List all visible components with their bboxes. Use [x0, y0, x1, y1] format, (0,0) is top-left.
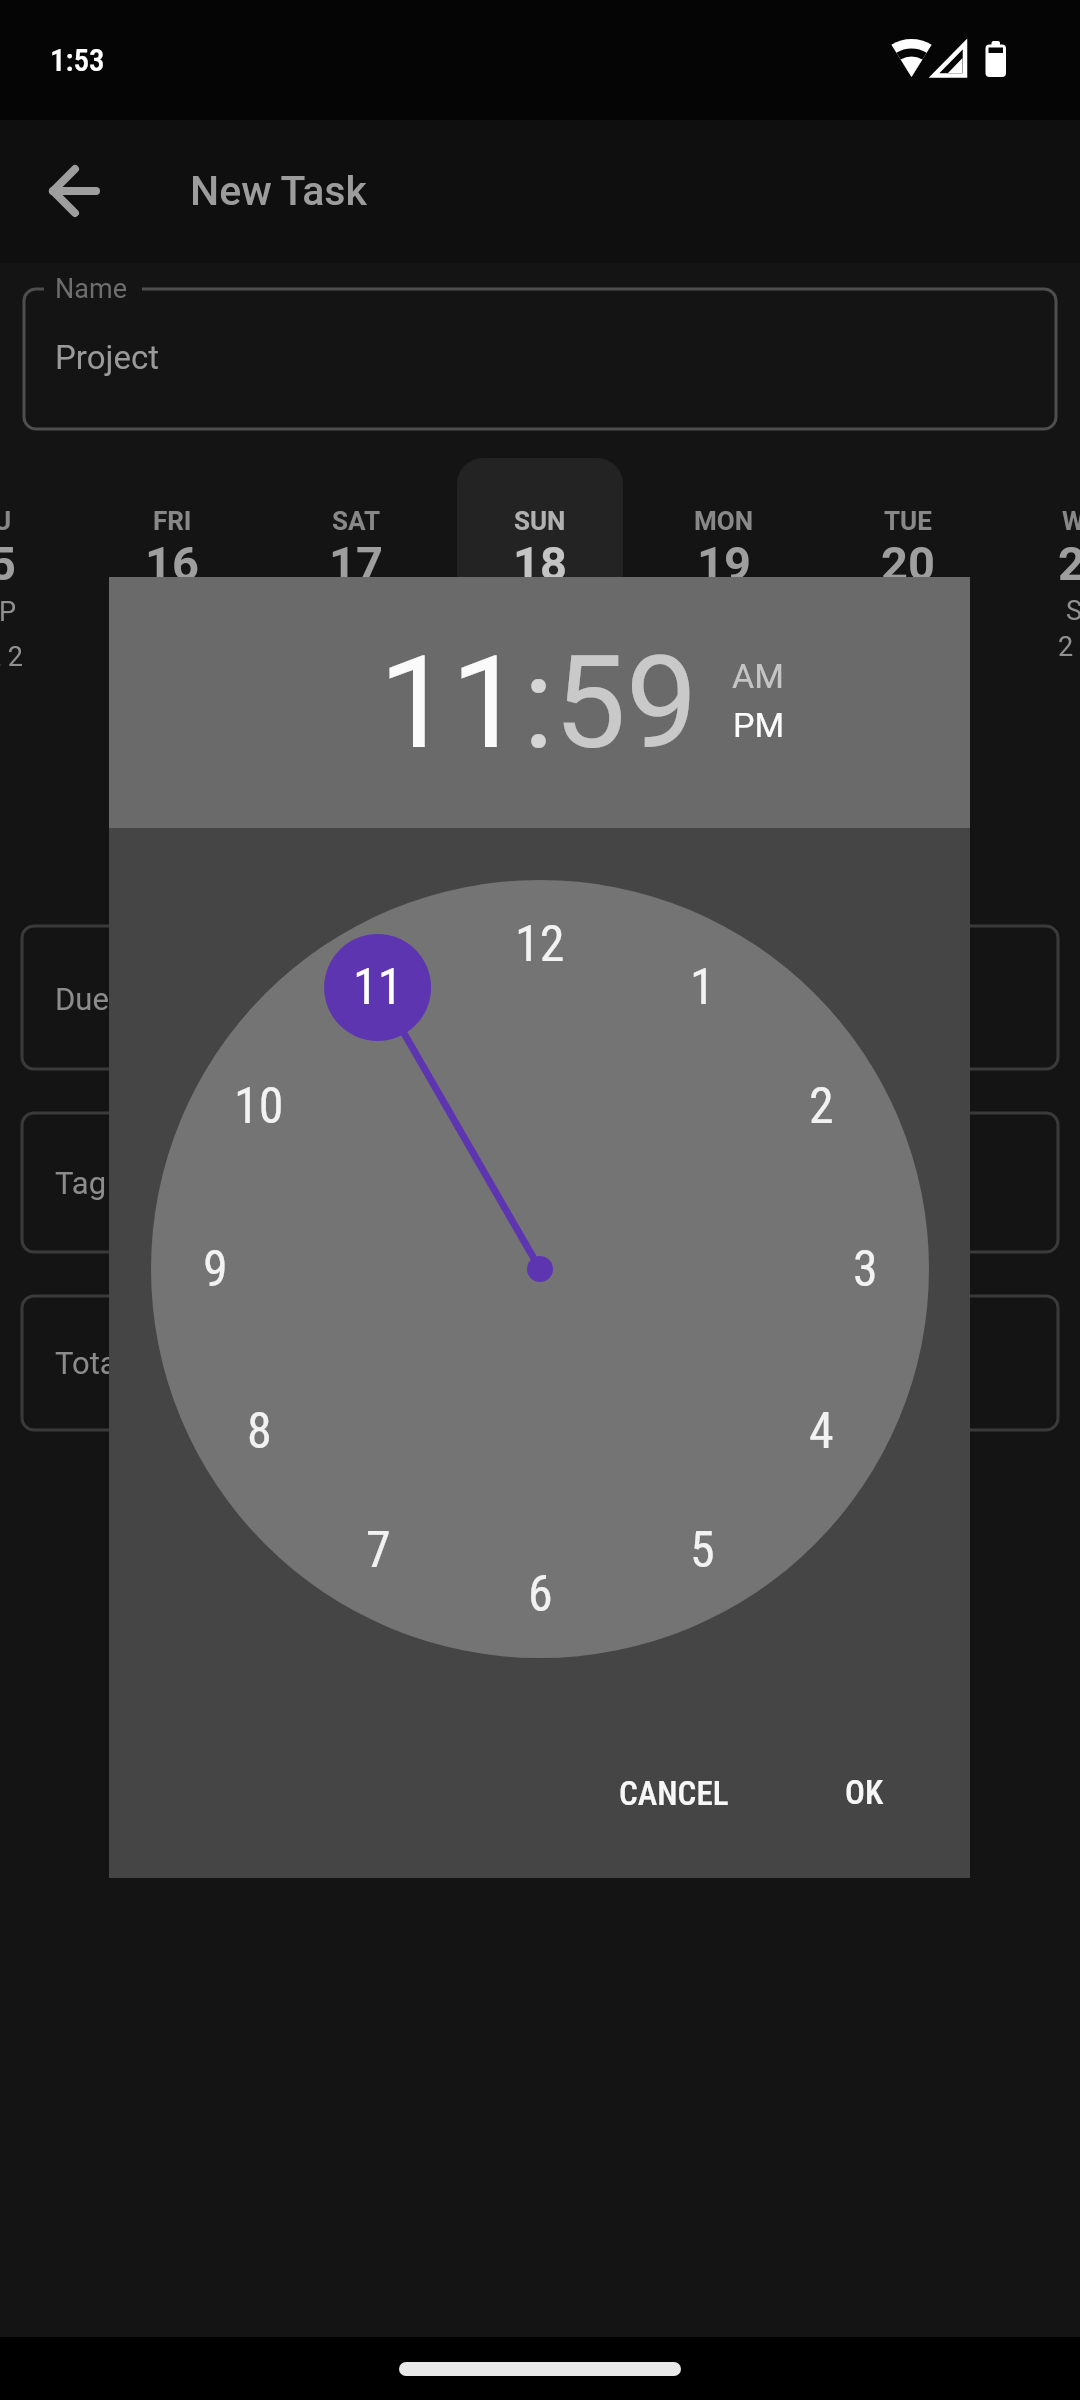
button[interactable] — [458, 458, 622, 618]
button[interactable] — [814, 1760, 915, 1826]
staticText: 4 — [809, 1402, 834, 1461]
staticText: Project — [55, 338, 159, 377]
staticText: 2 — [1058, 536, 1080, 591]
staticText: 17 — [329, 536, 383, 591]
button[interactable] — [151, 880, 929, 1658]
staticText: Total — [55, 1345, 125, 1381]
staticText: 18 — [513, 536, 567, 591]
staticText: 1 — [690, 958, 715, 1017]
staticText: 7 — [366, 1521, 391, 1580]
staticText: TUE — [884, 506, 932, 536]
staticText: AM — [732, 656, 784, 696]
button[interactable] — [30, 150, 120, 234]
button[interactable] — [826, 458, 990, 618]
staticText: U — [0, 506, 12, 536]
staticText: 2 0 — [1058, 631, 1080, 663]
staticText: 9 — [203, 1240, 228, 1299]
button[interactable] — [274, 458, 438, 618]
staticText: New Task — [190, 167, 367, 215]
button[interactable] — [589, 1760, 760, 1826]
button[interactable] — [24, 289, 1056, 429]
staticText: SUN — [514, 506, 566, 536]
button[interactable] — [22, 1296, 1058, 1430]
staticText: MON — [694, 506, 754, 536]
staticText: CANCEL — [619, 1774, 729, 1813]
staticText: 2 — [809, 1077, 834, 1136]
staticText: W — [1062, 506, 1080, 536]
staticText: 5 — [0, 536, 16, 591]
staticText: Name — [55, 273, 127, 305]
staticText: S — [1066, 595, 1080, 627]
staticText: 6 — [528, 1565, 553, 1624]
button[interactable] — [722, 701, 796, 752]
button[interactable] — [722, 650, 796, 701]
staticText: 12 — [515, 915, 565, 974]
staticText: 11 — [353, 958, 403, 1017]
staticText: 19 — [697, 536, 751, 591]
staticText: 5 — [690, 1521, 715, 1580]
staticText: 10 — [234, 1077, 284, 1136]
button[interactable] — [642, 458, 806, 618]
staticText: SAT — [332, 506, 381, 536]
staticText: 3 — [853, 1240, 878, 1299]
staticText: P — [0, 596, 17, 628]
staticText: Due — [55, 981, 109, 1017]
button[interactable] — [90, 458, 254, 618]
staticText: 20 — [881, 536, 935, 591]
staticText: PM — [733, 705, 785, 745]
staticText: 11:59 — [379, 628, 698, 778]
staticText: Tag — [55, 1165, 107, 1201]
staticText: 16 — [145, 536, 199, 591]
staticText: 1:53 — [50, 42, 105, 78]
button[interactable] — [22, 1113, 1058, 1252]
button[interactable] — [22, 926, 1058, 1069]
staticText: 8 — [247, 1402, 272, 1461]
staticText: OK — [845, 1773, 884, 1812]
staticText: FRI — [153, 506, 192, 536]
staticText: 2 2 — [0, 641, 24, 673]
